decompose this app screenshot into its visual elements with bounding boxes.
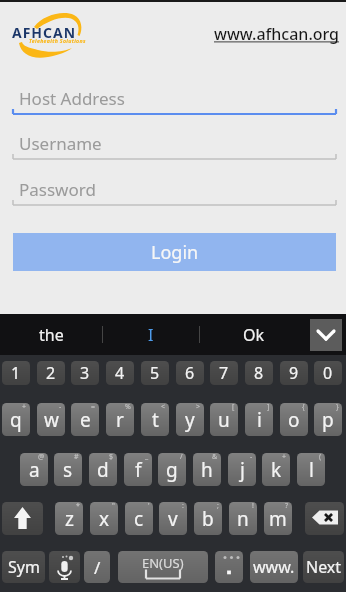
staticText: } [336,403,339,412]
button[interactable]: 1 [2,361,30,385]
button[interactable]: n [229,502,257,535]
staticText: q [10,407,22,433]
button[interactable]: d [89,453,117,486]
button[interactable]: Sym [2,551,45,583]
button[interactable]: c [125,502,153,535]
button[interactable]: t [141,403,169,436]
staticText: [ [232,403,235,412]
staticText: o [288,407,300,433]
button[interactable]: 2 [37,361,65,385]
button[interactable]: q [2,403,30,436]
button[interactable]: 9 [280,361,308,385]
button[interactable]: k [262,453,290,486]
button[interactable]: 4 [106,361,134,385]
staticText: Ok [243,324,265,346]
staticText: * [76,502,80,511]
staticText: u [218,407,230,433]
staticText: { [302,403,305,412]
staticText: Telehealth Solutions [29,37,86,44]
button[interactable]: r [106,403,134,436]
button[interactable]: I [103,314,199,355]
staticText: ' [148,502,150,511]
button[interactable]: l [297,453,325,486]
staticText: - [250,453,253,462]
staticText: ? [285,502,289,511]
button[interactable]: o [280,403,308,436]
button[interactable]: Ok [200,314,307,355]
staticText: + [22,403,27,412]
button[interactable]: z [55,502,83,535]
button[interactable]: the [0,314,102,355]
staticText: n [237,506,249,532]
button[interactable]: h [193,453,221,486]
button[interactable]: a [20,453,48,486]
staticText: / [180,453,183,462]
button[interactable]: Backspace [305,502,344,535]
staticText: 0 [323,362,333,384]
staticText: 4 [115,362,125,384]
staticText: k [271,457,282,483]
staticText: AFHCAN [12,23,77,42]
staticText: e [80,407,91,433]
button[interactable]: Next [303,551,344,583]
staticText: z [65,506,74,532]
button[interactable]: Shift [2,502,43,535]
button[interactable]: i [245,403,273,436]
staticText: 7 [219,362,229,384]
staticText: " [112,502,115,511]
button[interactable]: 7 [210,361,238,385]
button[interactable]: m [264,502,292,535]
button[interactable]: j [228,453,256,486]
staticText: 9 [289,362,299,384]
button[interactable]: e [71,403,99,436]
staticText: < [161,403,166,412]
button[interactable]: g [158,453,186,486]
staticText: & [212,453,218,462]
button[interactable]: b [194,502,222,535]
staticText: a [29,457,40,483]
button[interactable]: u [210,403,238,436]
button[interactable]: 3 [71,361,99,385]
staticText: s [63,457,73,483]
button[interactable]: Hide keyboard [310,319,342,351]
button[interactable]: v [159,502,187,535]
staticText: www. [253,556,295,578]
button[interactable]: s [54,453,82,486]
staticText: 5 [150,362,160,384]
staticText: Login [151,240,199,265]
staticText: ! [252,502,254,511]
button[interactable]: www. [250,551,298,583]
staticText: @ [38,453,45,462]
button[interactable]: 6 [176,361,204,385]
staticText: p [322,407,334,433]
button[interactable]: 5 [141,361,169,385]
staticText: i [257,407,262,433]
button[interactable]: x [90,502,118,535]
staticText: / [94,556,101,579]
staticText: 1 [11,362,21,384]
staticText: v [168,506,178,532]
staticText: www.afhcan.org [214,23,340,45]
staticText: the [39,324,64,346]
button[interactable]: Period [215,551,243,583]
button[interactable]: 8 [245,361,273,385]
staticText: g [166,457,178,483]
staticText: d [97,457,109,483]
staticText: ( [319,453,322,462]
button[interactable]: www.afhcan.org [214,23,340,45]
button[interactable]: f [124,453,152,486]
staticText: 8 [254,362,264,384]
button[interactable]: / [84,551,110,583]
staticText: # [74,453,79,462]
button[interactable]: Voice input [49,551,80,583]
button[interactable]: Space [118,551,208,583]
staticText: : [182,502,184,511]
button[interactable]: y [176,403,204,436]
button[interactable]: 0 [314,361,342,385]
button[interactable]: p [314,403,342,436]
staticText: l [309,457,314,483]
staticText: ] [267,403,270,412]
button[interactable]: w [37,403,65,436]
staticText: r [116,407,124,433]
button[interactable]: Login [13,233,336,271]
